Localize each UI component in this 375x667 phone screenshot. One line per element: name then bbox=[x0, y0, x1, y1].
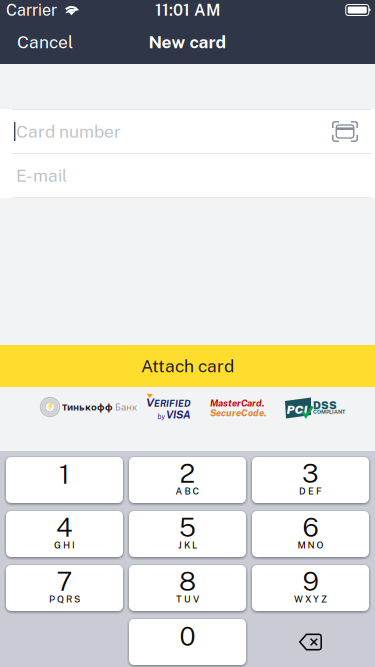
button[interactable]: Delete bbox=[252, 619, 369, 665]
staticText: P Q R S bbox=[49, 593, 80, 604]
staticText: New card bbox=[148, 32, 226, 52]
button[interactable]: 6 bbox=[252, 511, 369, 557]
button[interactable]: 3 bbox=[252, 457, 369, 503]
staticText: DSS bbox=[313, 399, 337, 412]
staticText: 6 bbox=[302, 511, 318, 543]
staticText: 11:01 AM bbox=[155, 1, 220, 19]
staticText: 5 bbox=[179, 511, 196, 543]
staticText: 1 bbox=[59, 458, 70, 490]
staticText: 0 bbox=[179, 620, 195, 652]
staticText: G H I bbox=[54, 539, 75, 550]
staticText: 8 bbox=[179, 565, 196, 597]
button[interactable]: 8 bbox=[129, 565, 246, 611]
staticText: Card number bbox=[16, 121, 121, 142]
staticText: Cancel bbox=[17, 32, 73, 52]
button[interactable]: 9 bbox=[252, 565, 369, 611]
staticText: V bbox=[146, 395, 154, 409]
button[interactable]: 0 bbox=[129, 619, 246, 665]
staticText: COMPLIANT bbox=[313, 409, 345, 415]
button[interactable]: 2 bbox=[129, 457, 246, 503]
staticText: ERIFIED bbox=[154, 398, 191, 409]
staticText: VISA bbox=[166, 408, 191, 421]
staticText: M N O bbox=[297, 539, 323, 550]
staticText: 7 bbox=[56, 565, 72, 597]
button[interactable]: 7 bbox=[6, 565, 123, 611]
staticText: 2 bbox=[179, 457, 195, 489]
staticText: 9 bbox=[302, 565, 318, 597]
staticText: A B C bbox=[175, 485, 199, 496]
button[interactable]: 5 bbox=[129, 511, 246, 557]
staticText: T U V bbox=[176, 593, 199, 604]
staticText: 4 bbox=[56, 511, 73, 543]
staticText: PCI bbox=[286, 402, 307, 416]
staticText: J K L bbox=[178, 539, 197, 550]
button[interactable]: Scan card bbox=[332, 121, 358, 142]
staticText: SecureCode. bbox=[210, 407, 267, 418]
staticText: 3 bbox=[302, 457, 319, 489]
staticText: E-mail bbox=[16, 165, 67, 186]
button[interactable]: Attach card bbox=[0, 345, 375, 387]
staticText: Carrier bbox=[6, 1, 57, 19]
button[interactable]: 1 bbox=[6, 457, 123, 503]
staticText: by bbox=[157, 413, 164, 421]
staticText: Банк bbox=[115, 401, 137, 413]
staticText: MasterCard. bbox=[210, 397, 265, 408]
button[interactable]: 4 bbox=[6, 511, 123, 557]
button[interactable]: Cancel bbox=[0, 20, 90, 64]
staticText: Attach card bbox=[141, 356, 234, 376]
staticText: Тинькофф bbox=[62, 401, 113, 413]
staticText: D E F bbox=[299, 485, 322, 496]
staticText: W X Y Z bbox=[294, 593, 327, 604]
